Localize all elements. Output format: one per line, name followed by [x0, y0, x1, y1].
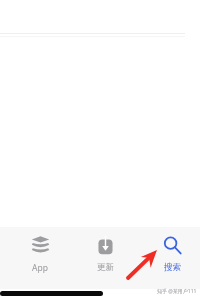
staticText: App: [32, 262, 48, 274]
button[interactable]: Updates: [72, 227, 138, 289]
staticText: 更新: [97, 262, 114, 273]
button[interactable]: Search: [139, 227, 200, 289]
button[interactable]: App: [7, 227, 73, 289]
staticText: 知乎 @某用户111: [157, 288, 197, 295]
staticText: 搜索: [164, 262, 181, 273]
